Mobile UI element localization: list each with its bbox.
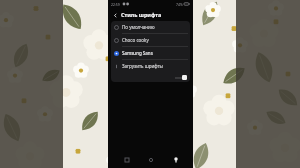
staticText: Стиль шрифта xyxy=(121,11,162,18)
button[interactable]: Назад xyxy=(110,10,120,20)
button[interactable]: Домой xyxy=(144,153,157,166)
staticText: Samsung Sans xyxy=(122,50,153,56)
staticText: Choco cooky xyxy=(122,37,149,43)
button[interactable]: По умолчанию xyxy=(111,21,190,34)
staticText: По умолчанию xyxy=(122,24,155,30)
staticText: 22:59 xyxy=(111,2,120,7)
staticText: Загрузить шрифты xyxy=(122,63,163,69)
staticText: 74% xyxy=(176,2,183,7)
button[interactable]: Назад xyxy=(169,153,182,166)
button[interactable]: Последние приложения xyxy=(120,153,133,166)
button[interactable]: Choco cooky xyxy=(111,34,190,47)
button[interactable]: Загрузить шрифты xyxy=(114,60,190,72)
button[interactable]: Samsung Sans xyxy=(111,47,190,60)
button[interactable]: Прокрутка xyxy=(182,75,187,80)
